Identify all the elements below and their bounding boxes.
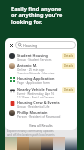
staticText: Nearby Vehicle Found bbox=[17, 87, 58, 92]
button[interactable]: Nearby Vehicle Found bbox=[5, 85, 77, 98]
staticText: Housing Crew & Events bbox=[17, 100, 60, 105]
staticText: Details bbox=[64, 64, 73, 68]
staticText: Explore nearby community updates and off… bbox=[7, 129, 55, 136]
staticText: Group · Student Services bbox=[17, 58, 52, 61]
staticText: Person · Resident of Rosewood bbox=[17, 115, 61, 119]
staticText: Page · Application form bbox=[17, 81, 50, 85]
staticText: Student Housing bbox=[17, 53, 48, 58]
staticText: View all Results bbox=[29, 123, 53, 127]
button[interactable]: Housing bbox=[15, 41, 76, 49]
button[interactable]: Antonio M. bbox=[5, 61, 77, 74]
button[interactable] bbox=[65, 137, 77, 150]
staticText: Group · Residential Life bbox=[17, 105, 50, 108]
button[interactable]: Housing Crew & Events bbox=[5, 98, 77, 108]
staticText: 12:15pm · East Lot Garage bbox=[17, 96, 54, 98]
staticText: Details bbox=[64, 88, 73, 92]
button[interactable] bbox=[5, 137, 17, 150]
staticText: Easily find anyone or anything you're lo… bbox=[11, 5, 63, 26]
staticText: Online · 25 min ago bbox=[17, 68, 45, 72]
staticText: Details bbox=[64, 54, 73, 58]
button[interactable]: Details bbox=[62, 53, 75, 59]
staticText: Event · Wednesday, Apr 16 bbox=[17, 92, 55, 96]
button[interactable] bbox=[41, 137, 53, 150]
staticText: Housing Application bbox=[17, 76, 55, 81]
button[interactable]: Student Housing bbox=[5, 51, 77, 61]
staticText: 2 mutual friends · Housing bbox=[17, 72, 55, 74]
button[interactable]: Housing Application bbox=[5, 74, 77, 85]
button[interactable]: Details bbox=[62, 63, 75, 69]
button[interactable]: Phillip Mountain bbox=[5, 108, 77, 119]
button[interactable] bbox=[53, 137, 65, 150]
button[interactable]: View all Results bbox=[5, 119, 77, 130]
button[interactable]: Close search bbox=[8, 42, 14, 48]
button[interactable]: Details bbox=[62, 87, 75, 93]
staticText: Phillip Mountain bbox=[17, 110, 48, 115]
button[interactable] bbox=[29, 137, 41, 150]
staticText: Antonio M. bbox=[17, 63, 38, 68]
button[interactable] bbox=[17, 137, 29, 150]
staticText: Housing bbox=[23, 43, 38, 48]
